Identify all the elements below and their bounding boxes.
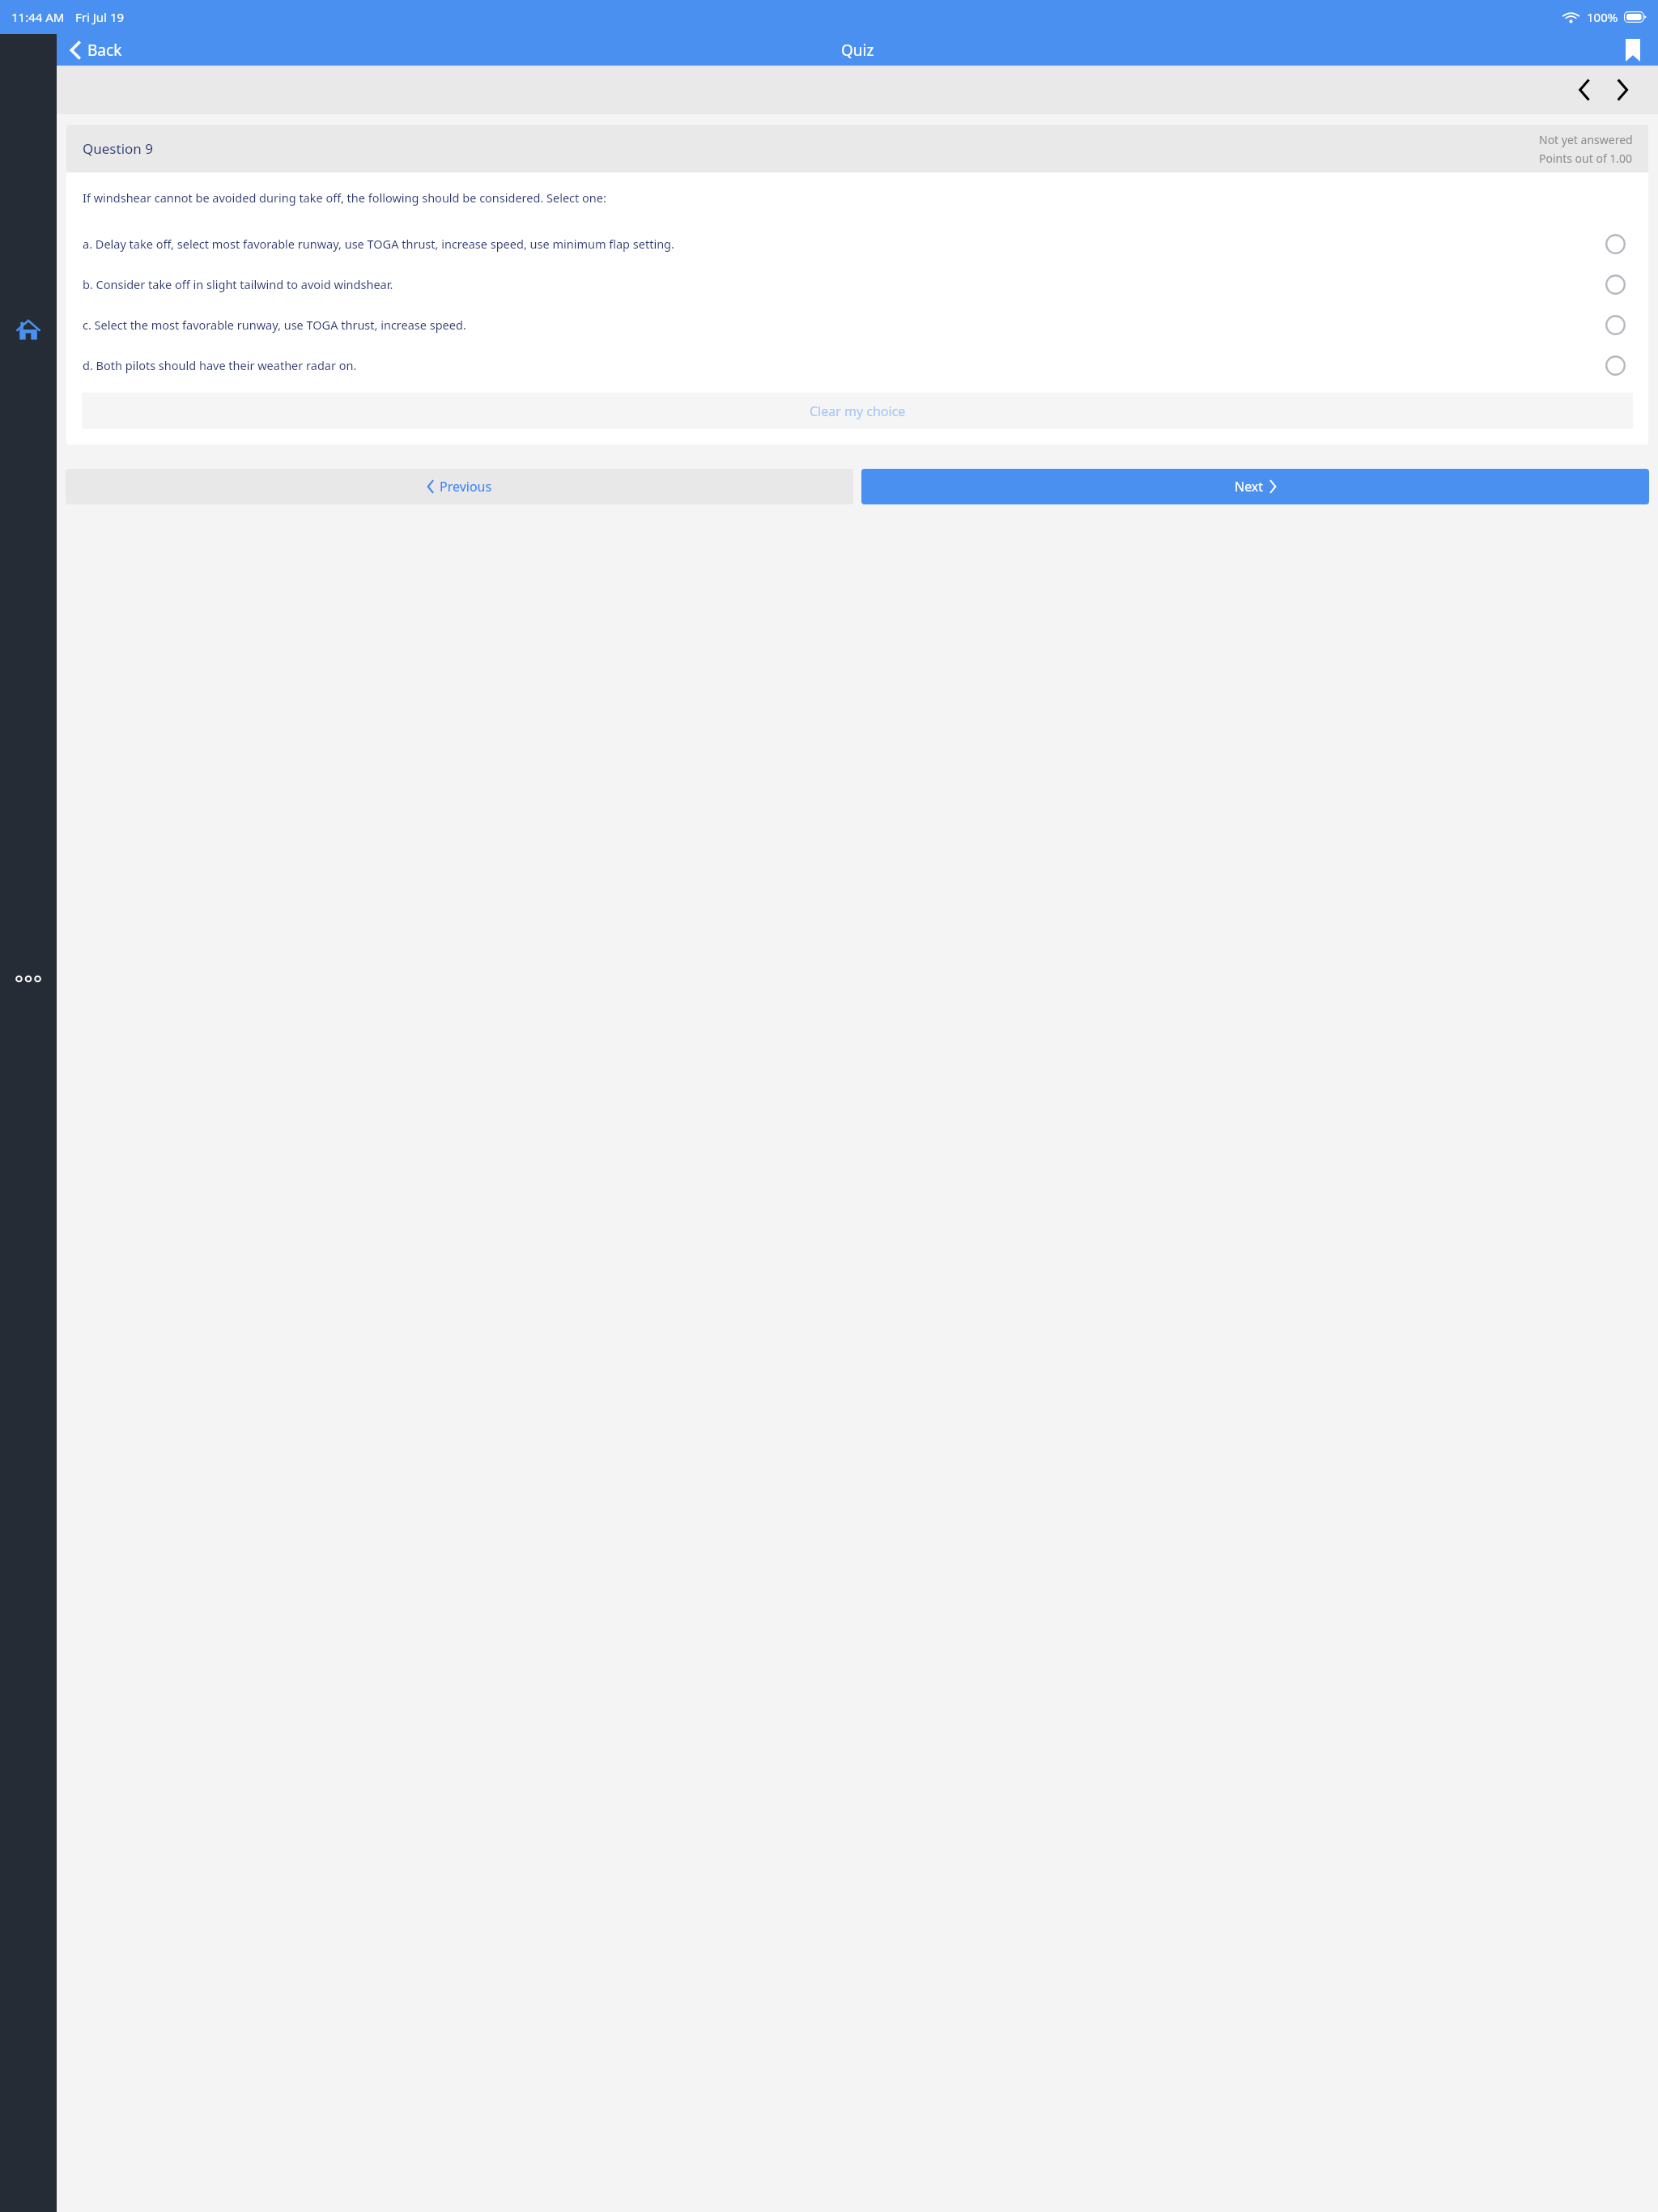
staticText: Points out of 1.00 [1539,151,1633,166]
staticText: Quiz [841,40,874,61]
staticText: Not yet answered [1539,132,1633,147]
staticText: b. Consider take off in slight tailwind … [83,276,393,292]
staticText: 100% [1587,9,1618,25]
staticText: Clear my choice [810,402,906,420]
staticText: Fri Jul 19 [75,9,125,25]
button[interactable]: Clear my choice [82,393,1633,429]
button[interactable]: Home [11,313,46,348]
staticText: d. Both pilots should have their weather… [83,357,357,373]
staticText: a. Delay take off, select most favorable… [83,236,674,252]
staticText: 11:44 AM [11,9,65,25]
staticText: Back [87,40,122,61]
button[interactable]: b. Consider take off in slight tailwind … [66,264,1648,304]
button[interactable]: Previous question [1566,72,1601,108]
button[interactable]: Next [861,469,1649,504]
button[interactable]: c. Select the most favorable runway, use… [66,304,1648,345]
staticText: Question 9 [83,139,153,158]
button[interactable]: Previous [66,469,853,504]
button[interactable]: Next question [1605,72,1640,108]
button[interactable]: a. Delay take off, select most favorable… [66,223,1648,264]
staticText: c. Select the most favorable runway, use… [83,317,466,333]
staticText: Next [1235,478,1264,496]
staticText: If windshear cannot be avoided during ta… [83,189,606,206]
button[interactable]: Back [65,36,127,64]
staticText: Previous [440,478,492,496]
button[interactable]: d. Both pilots should have their weather… [66,345,1648,385]
button[interactable]: More options [11,961,46,997]
button[interactable]: Bookmark [1619,36,1647,64]
